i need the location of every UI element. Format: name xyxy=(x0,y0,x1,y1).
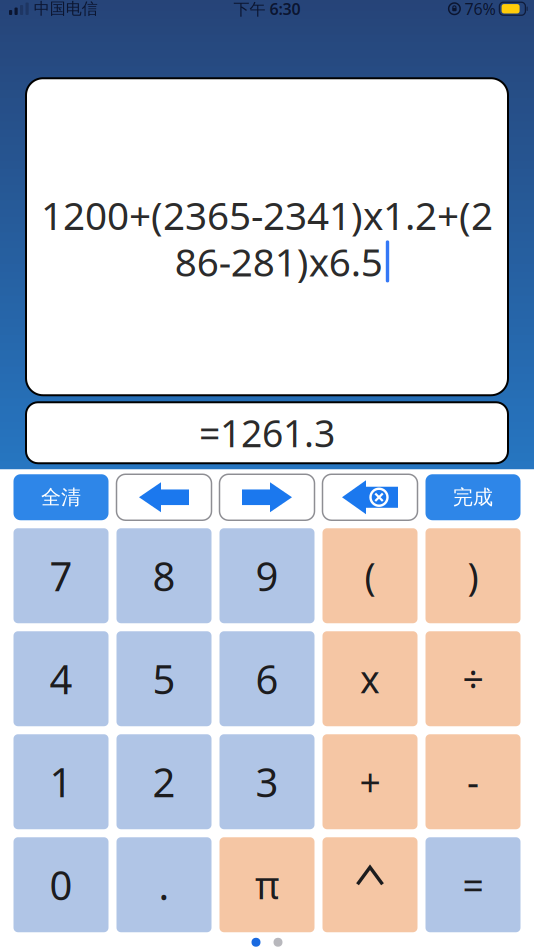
staticText: 7 xyxy=(49,549,72,602)
staticText: 0 xyxy=(49,858,72,911)
staticText: 76% xyxy=(464,0,495,19)
staticText: x xyxy=(360,654,380,704)
staticText: 6 xyxy=(255,652,278,705)
staticText: ( xyxy=(364,551,375,601)
staticText: ÷ xyxy=(462,654,483,704)
staticText: . xyxy=(158,858,169,911)
staticText: + xyxy=(359,757,380,807)
staticText: - xyxy=(467,757,479,807)
staticText: 2 xyxy=(152,755,175,808)
staticText: =1261.3 xyxy=(199,408,335,458)
staticText: 9 xyxy=(255,549,278,602)
staticText: = xyxy=(462,860,483,910)
staticText: ) xyxy=(467,551,478,601)
staticText: 5 xyxy=(152,652,175,705)
staticText: 86-281)x6.5 xyxy=(175,236,383,287)
staticText: 1 xyxy=(49,755,72,808)
staticText: π xyxy=(255,860,279,910)
staticText: 3 xyxy=(255,755,278,808)
staticText: 全清 xyxy=(41,485,81,510)
staticText: 4 xyxy=(49,652,72,705)
staticText: 完成 xyxy=(453,485,493,510)
staticText: 中国电信 xyxy=(34,0,98,19)
staticText: 8 xyxy=(152,549,175,602)
staticText: 下午 6:30 xyxy=(233,0,300,19)
staticText: 1200+(2365-2341)x1.2+(2 xyxy=(41,189,493,241)
